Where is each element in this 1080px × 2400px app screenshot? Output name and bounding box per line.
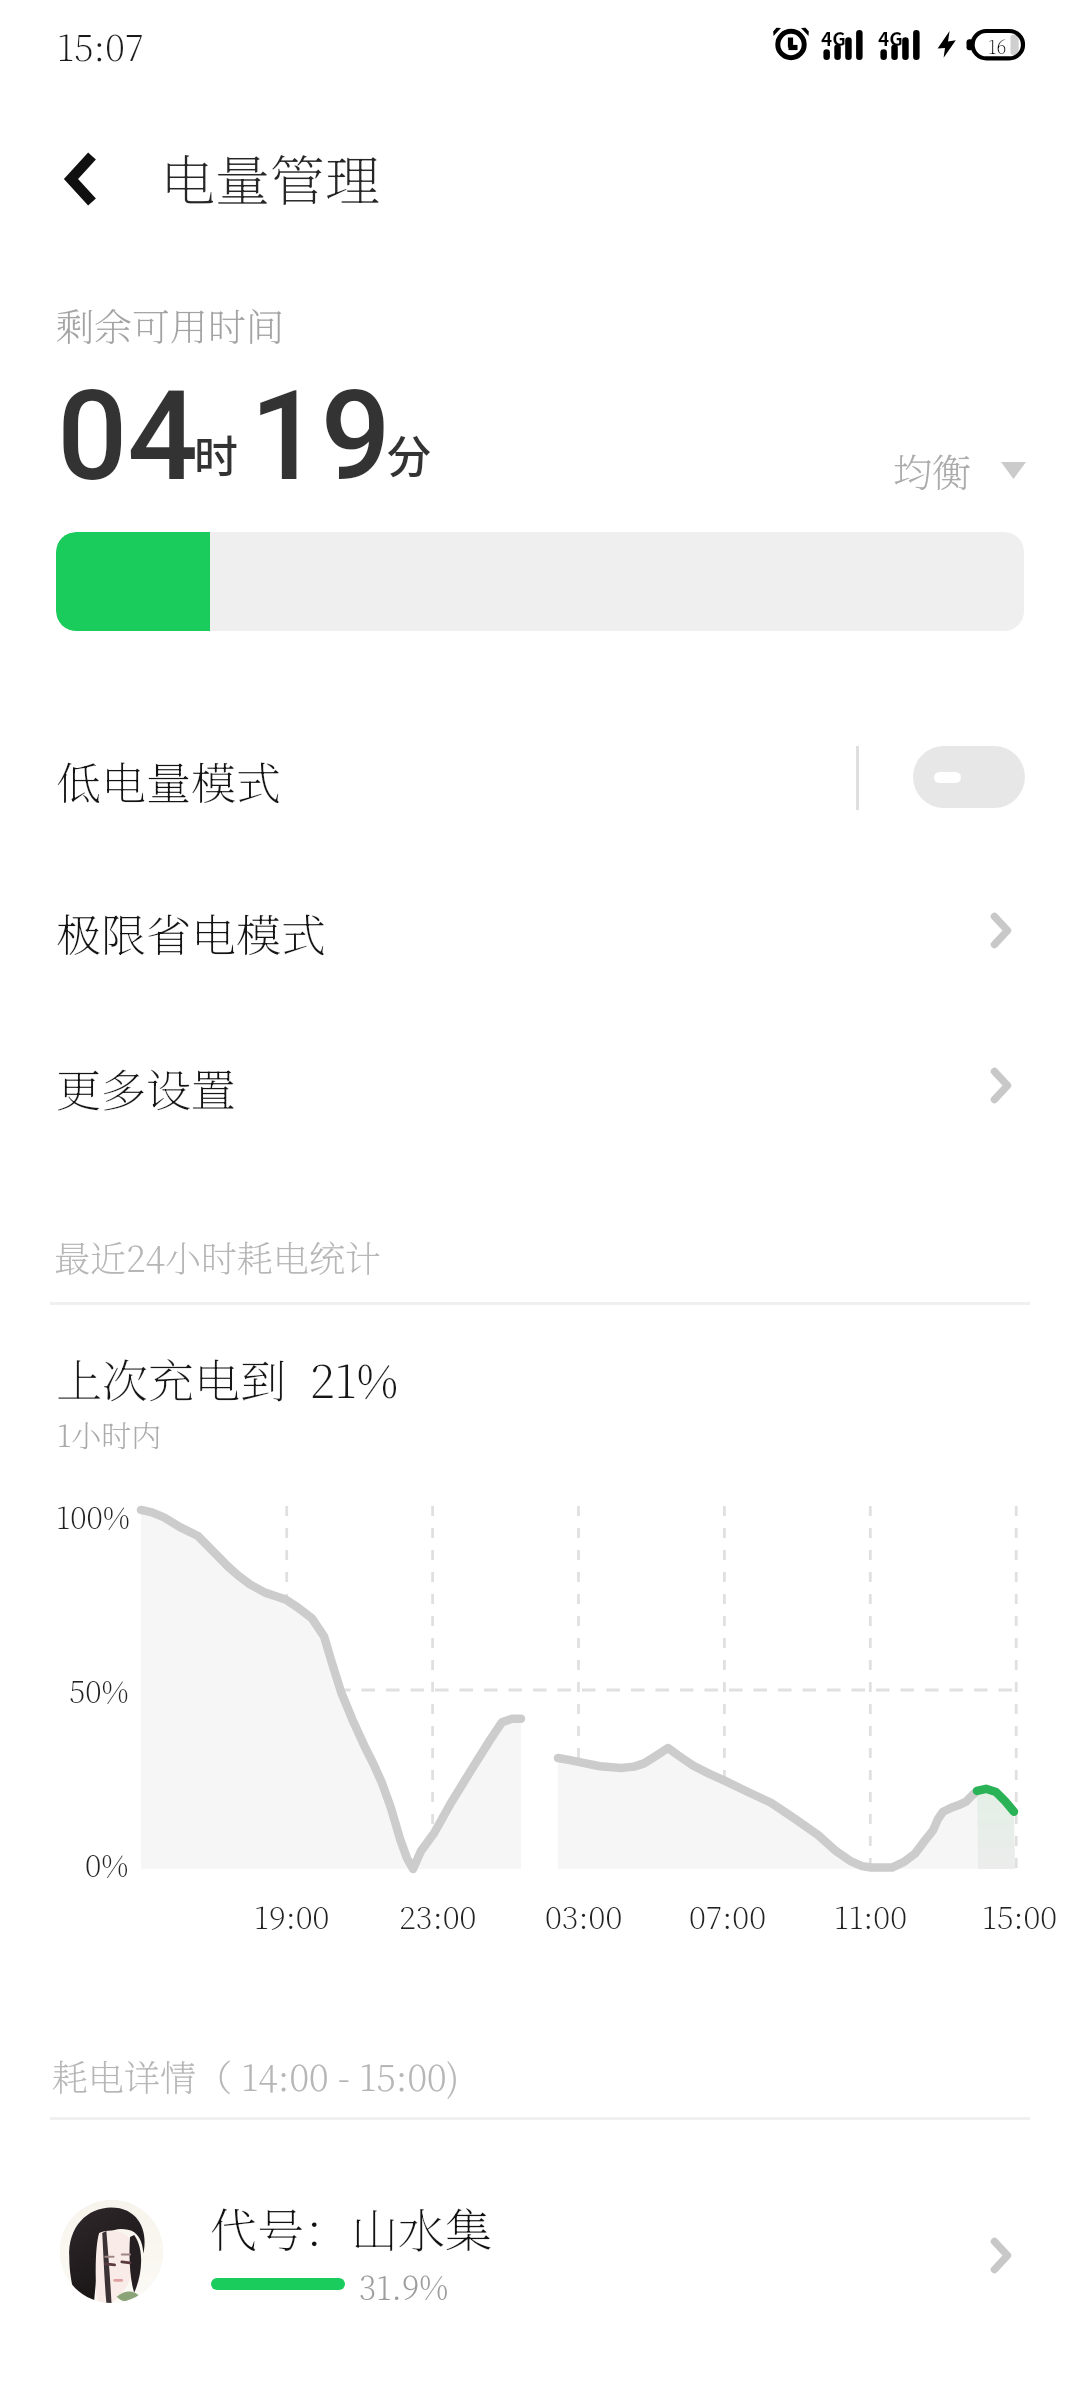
other: 充电中	[937, 31, 957, 59]
staticText: 电量管理	[160, 138, 381, 217]
button[interactable]: 低电量模式	[0, 700, 1080, 854]
staticText: 16	[988, 33, 1007, 59]
staticText: 11:00	[834, 1893, 907, 1938]
staticText: 4G	[821, 24, 846, 52]
staticText: 50%	[69, 1668, 129, 1711]
staticText: 均衡	[893, 442, 972, 498]
staticText: 更多设置	[56, 1055, 237, 1120]
other: 4G 信号	[879, 28, 921, 60]
button[interactable]: 低电量模式开关	[913, 746, 1025, 808]
staticText: 15:00	[982, 1893, 1058, 1938]
staticText: 4G	[878, 24, 903, 52]
staticText: 低电量模式	[56, 748, 282, 813]
staticText: 19	[250, 364, 391, 509]
other: 4G 信号	[822, 28, 864, 60]
button[interactable]: 更多设置	[0, 1007, 1080, 1161]
button[interactable]: 均衡	[893, 442, 1026, 498]
button[interactable]: 代号：山水集	[0, 2170, 1080, 2340]
staticText: 19:00	[254, 1893, 330, 1938]
staticText: 剩余可用时间	[56, 297, 285, 352]
staticText: 1小时内	[57, 1412, 162, 1455]
button[interactable]: 极限省电模式	[0, 852, 1080, 1006]
staticText: 0%	[85, 1842, 129, 1885]
staticText: 07:00	[689, 1893, 766, 1938]
staticText: 时	[194, 422, 238, 486]
staticText: 代号：山水集	[210, 2194, 492, 2262]
staticText: 15:07	[57, 20, 144, 72]
staticText: 03:00	[545, 1893, 623, 1938]
staticText: 耗电详情（ 14:00 - 15:00)	[52, 2050, 460, 2102]
button[interactable]: 返回	[48, 141, 114, 217]
staticText: 分	[387, 422, 431, 486]
staticText: 04	[57, 364, 198, 509]
staticText: 31.9%	[359, 2263, 449, 2309]
staticText: 23:00	[399, 1893, 477, 1938]
staticText: 100%	[56, 1494, 130, 1537]
other: 闹钟	[772, 22, 810, 60]
staticText: 最近24小时耗电统计	[54, 1231, 382, 1283]
other: 电量 16%	[966, 28, 1024, 61]
staticText: 上次充电到 21%	[56, 1345, 399, 1411]
staticText: 极限省电模式	[56, 900, 327, 965]
